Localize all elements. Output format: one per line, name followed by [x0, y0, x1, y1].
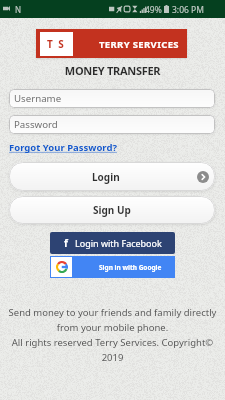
staticText: MONEY TRANSFER	[0, 63, 225, 78]
staticText: N	[15, 4, 22, 15]
staticText: Sign Up	[93, 203, 131, 217]
staticText: Sign in with Google	[99, 263, 162, 272]
staticText: Username	[14, 92, 62, 105]
staticText: T S	[47, 37, 66, 51]
button[interactable]: Sign in with Google	[50, 256, 175, 278]
staticText: 3:06 PM	[172, 4, 204, 16]
button[interactable]: Login	[9, 162, 215, 191]
button[interactable]: Forgot Your Password?	[9, 141, 117, 154]
staticText: Login	[92, 170, 120, 184]
staticText: TERRY SERVICES	[99, 38, 179, 51]
staticText: Password	[14, 118, 58, 131]
button[interactable]: Password	[9, 115, 215, 134]
button[interactable]: Sign Up	[9, 196, 215, 224]
staticText: 49%	[145, 4, 162, 16]
staticText: Login with Facebook	[75, 237, 162, 249]
staticText: f	[64, 236, 68, 250]
button[interactable]: Username	[9, 89, 215, 108]
button[interactable]: f	[50, 232, 175, 254]
staticText: Send money to your friends and family di…	[0, 306, 225, 363]
